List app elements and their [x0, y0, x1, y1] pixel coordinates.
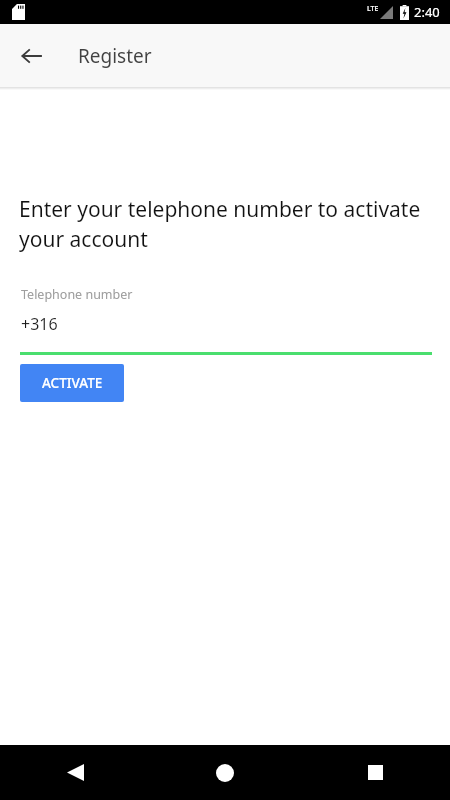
staticText: LTE: [367, 4, 379, 14]
staticText: Enter your telephone number to activate …: [19, 195, 432, 253]
button[interactable]: Back: [0, 745, 150, 800]
button[interactable]: Back: [8, 32, 56, 80]
button[interactable]: Home: [150, 745, 300, 800]
staticText: Register: [78, 43, 152, 69]
staticText: ACTIVATE: [42, 374, 103, 392]
button[interactable]: Recent apps: [300, 745, 450, 800]
staticText: 2:40: [414, 3, 440, 21]
staticText: +316: [21, 313, 58, 335]
staticText: Telephone number: [21, 286, 133, 303]
button[interactable]: ACTIVATE: [20, 364, 124, 402]
